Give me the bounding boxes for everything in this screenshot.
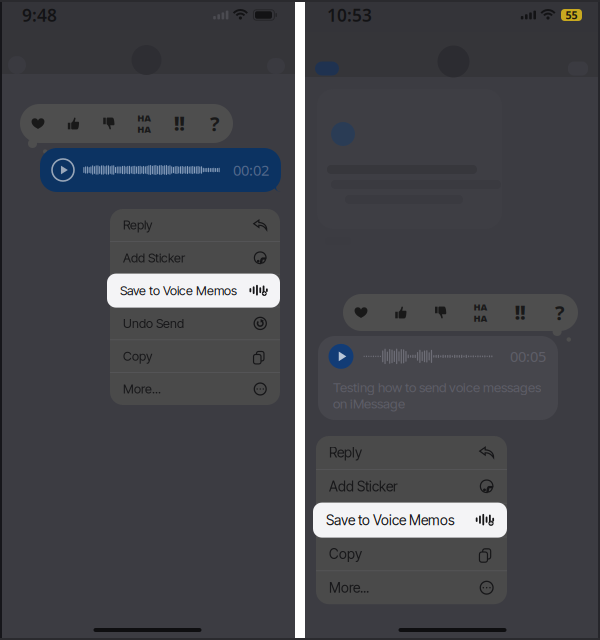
button[interactable]: Reply [110, 209, 280, 241]
button[interactable]: Play voice message [49, 156, 77, 184]
button[interactable]: Question mark [550, 294, 570, 331]
staticText: ? [555, 299, 565, 326]
staticText: ‼ [174, 111, 185, 136]
button[interactable]: Love [351, 294, 371, 331]
button[interactable]: More... [316, 571, 507, 604]
staticText: HA [473, 312, 487, 324]
button[interactable]: Thumbs down [431, 294, 451, 331]
staticText: Add Sticker [329, 478, 398, 495]
staticText: Copy [329, 545, 362, 562]
button[interactable]: Question mark [205, 104, 225, 143]
staticText: Save to Voice Memos [329, 512, 458, 528]
button[interactable]: Thumbs up [63, 104, 83, 143]
button[interactable]: Add Sticker [110, 242, 280, 274]
staticText: Save to Voice Memos [326, 512, 455, 528]
staticText: Copy [123, 348, 152, 364]
button[interactable]: Save to Voice Memos [313, 503, 507, 538]
button[interactable]: Thumbs up [391, 294, 411, 331]
button[interactable]: Exclamation [170, 104, 190, 143]
staticText: More... [329, 579, 369, 596]
button[interactable]: Haha [134, 104, 154, 143]
button[interactable]: Play voice message [327, 342, 355, 370]
staticText: HA [137, 112, 151, 124]
button[interactable]: Save to Voice Memos [110, 275, 280, 307]
staticText: HA [137, 123, 151, 135]
staticText: HA [473, 301, 487, 313]
button[interactable]: Reply [316, 436, 507, 469]
button[interactable]: Exclamation [510, 294, 530, 331]
button[interactable]: More... [110, 373, 280, 405]
staticText: 55 [565, 8, 577, 22]
staticText: Save to Voice Memos [123, 283, 240, 298]
button[interactable]: Add Sticker [316, 470, 507, 503]
button[interactable]: Save to Voice Memos [316, 504, 507, 537]
staticText: 10:53 [327, 3, 372, 26]
button[interactable]: Undo Send [110, 307, 280, 339]
staticText: ‼ [515, 300, 526, 325]
staticText: 9:48 [22, 3, 57, 26]
staticText: Add Sticker [123, 250, 185, 265]
staticText: Testing how to send voice messages on iM… [333, 379, 541, 412]
button[interactable]: Haha [470, 294, 490, 331]
staticText: 00:02 [233, 160, 269, 180]
button[interactable]: Love [28, 104, 48, 143]
staticText: Undo Send [123, 316, 184, 331]
staticText: 00:05 [510, 347, 546, 366]
button[interactable]: Thumbs down [99, 104, 119, 143]
button[interactable]: Save to Voice Memos [107, 274, 280, 308]
button[interactable]: Copy [316, 537, 507, 570]
staticText: Save to Voice Memos [120, 283, 237, 298]
staticText: Reply [123, 217, 152, 233]
button[interactable]: Copy [110, 340, 280, 372]
staticText: Reply [329, 444, 362, 461]
staticText: ? [210, 110, 220, 137]
staticText: More... [123, 381, 161, 397]
